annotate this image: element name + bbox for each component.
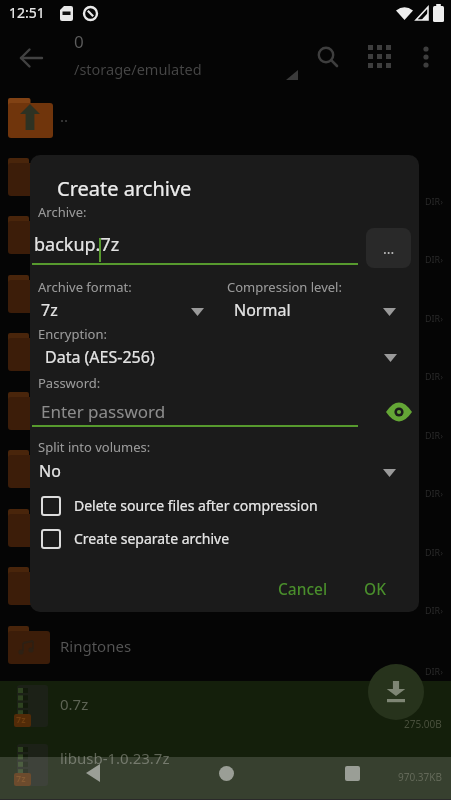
button[interactable] bbox=[386, 403, 412, 421]
button[interactable]: Create separate archive bbox=[41, 526, 361, 552]
staticText: DIR› bbox=[425, 253, 444, 265]
button[interactable]: Data (AES-256) bbox=[34, 343, 404, 373]
button[interactable] bbox=[219, 766, 234, 781]
button[interactable] bbox=[317, 46, 339, 68]
staticText: Encryption: bbox=[38, 325, 107, 343]
staticText: DIR› bbox=[425, 312, 444, 324]
button[interactable]: Cancel bbox=[269, 571, 337, 605]
staticText: 0.7z bbox=[60, 694, 89, 714]
staticText: .. bbox=[60, 106, 69, 126]
staticText: /storage/emulated bbox=[74, 59, 202, 79]
button[interactable]: OK bbox=[352, 571, 398, 605]
staticText: backup.7z bbox=[34, 232, 120, 257]
staticText: Ringtones bbox=[60, 636, 132, 656]
staticText: Cancel bbox=[278, 578, 328, 599]
button[interactable] bbox=[20, 49, 42, 67]
staticText: DIR› bbox=[425, 487, 444, 499]
staticText: 7z bbox=[16, 713, 26, 725]
button[interactable]: 7z bbox=[0, 740, 451, 799]
staticText: Password: bbox=[38, 374, 101, 392]
button[interactable]: .. bbox=[0, 96, 451, 155]
staticText: ... bbox=[383, 239, 395, 258]
button[interactable]: No bbox=[34, 457, 404, 487]
button[interactable] bbox=[423, 46, 429, 68]
staticText: DIR› bbox=[425, 195, 444, 207]
staticText: 7z bbox=[41, 299, 58, 321]
button[interactable]: Enter password bbox=[32, 396, 358, 428]
button[interactable]: 7z bbox=[34, 296, 210, 326]
button[interactable]: Normal bbox=[227, 296, 403, 326]
staticText: DIR› bbox=[425, 429, 444, 441]
staticText: Data (AES-256) bbox=[45, 346, 155, 368]
staticText: 0 bbox=[74, 30, 84, 53]
button[interactable]: Ringtones bbox=[0, 623, 451, 682]
staticText: Create archive bbox=[57, 175, 192, 202]
staticText: Split into volumes: bbox=[38, 438, 151, 456]
staticText: Archive: bbox=[38, 203, 87, 221]
staticText: No bbox=[39, 460, 61, 482]
staticText: DIR› bbox=[425, 546, 444, 558]
staticText: 275.00B bbox=[404, 717, 442, 731]
staticText: 970.37KB bbox=[398, 770, 442, 784]
staticText: DIR› bbox=[425, 370, 444, 382]
staticText: DIR› bbox=[425, 604, 444, 616]
button[interactable]: Delete source files after compression bbox=[41, 493, 361, 519]
button[interactable] bbox=[368, 664, 424, 720]
staticText: DIR› bbox=[425, 665, 444, 677]
staticText: libusb-1.0.23.7z bbox=[60, 748, 170, 768]
staticText: Create separate archive bbox=[74, 529, 230, 548]
staticText: Archive format: bbox=[38, 278, 132, 296]
staticText: Delete source files after compression bbox=[74, 496, 318, 515]
button[interactable] bbox=[345, 766, 360, 781]
staticText: Enter password bbox=[41, 400, 166, 423]
staticText: Normal bbox=[234, 299, 291, 321]
staticText: Compression level: bbox=[227, 278, 342, 296]
staticText: 12:51 bbox=[9, 3, 45, 22]
button[interactable] bbox=[86, 764, 100, 782]
staticText: 7z bbox=[16, 772, 26, 784]
staticText: OK bbox=[364, 578, 386, 599]
button[interactable]: 7z bbox=[0, 681, 451, 740]
button[interactable] bbox=[368, 45, 391, 68]
button[interactable]: ... bbox=[366, 228, 411, 268]
